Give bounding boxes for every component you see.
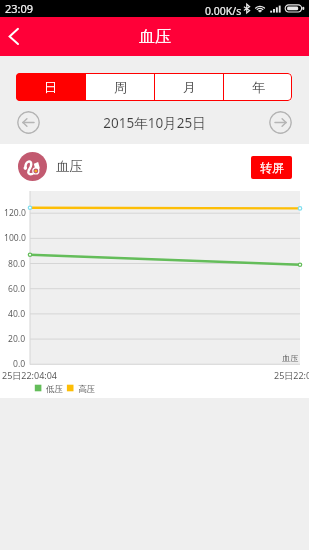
button[interactable]: 年 (224, 73, 292, 101)
staticText: 血压 (139, 27, 171, 47)
button[interactable]: Previous day (17, 111, 40, 134)
button[interactable]: 日 (16, 73, 85, 101)
button[interactable]: 周 (86, 73, 154, 101)
staticText: 80.0 (8, 258, 26, 270)
staticText: 高压 (78, 384, 96, 395)
staticText: 100.0 (4, 232, 26, 244)
button[interactable]: 月 (155, 73, 223, 101)
staticText: 血压 (282, 353, 299, 363)
staticText: 25日22:04:04 (2, 369, 58, 381)
staticText: 25日22:0 (274, 369, 309, 381)
staticText: 23:09 (5, 1, 34, 16)
button[interactable]: Back (0, 17, 34, 56)
staticText: 120.0 (4, 207, 26, 219)
staticText: 0.00K/s (205, 4, 242, 18)
staticText: 周 (114, 79, 127, 95)
staticText: 2015年10月25日 (103, 114, 206, 132)
staticText: 转屏 (260, 160, 284, 175)
button[interactable]: 转屏 (251, 156, 292, 179)
staticText: 月 (183, 79, 196, 95)
button[interactable]: Next day (269, 111, 292, 134)
staticText: 0.0 (13, 358, 26, 370)
staticText: 血压 (56, 158, 83, 175)
button[interactable]: 血压 (18, 152, 83, 181)
staticText: 40.0 (8, 308, 26, 320)
staticText: 年 (252, 79, 265, 95)
staticText: 20.0 (8, 333, 26, 345)
staticText: 日 (44, 79, 57, 95)
staticText: 低压 (46, 384, 64, 395)
staticText: 60.0 (8, 283, 26, 295)
